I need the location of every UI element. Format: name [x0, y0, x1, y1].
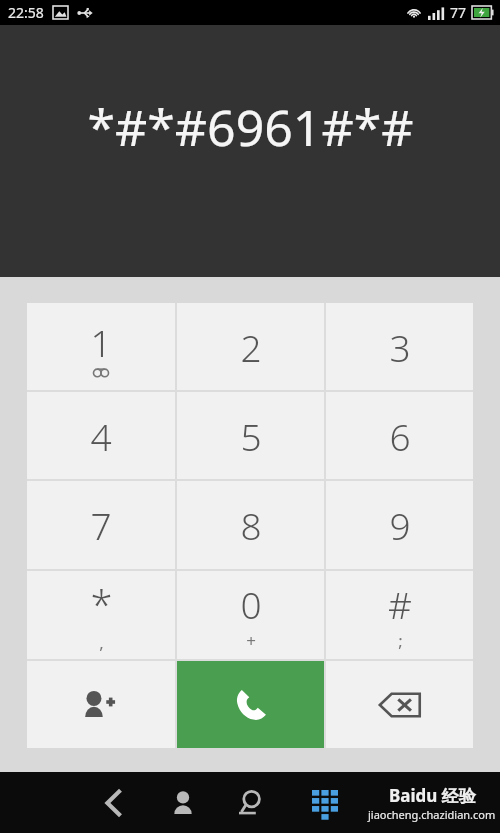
button[interactable]: 5: [177, 392, 324, 479]
staticText: 77: [450, 3, 467, 22]
staticText: 2: [240, 322, 262, 372]
staticText: 6: [389, 411, 411, 461]
button[interactable]: 1: [27, 303, 175, 390]
button[interactable]: 6: [326, 392, 473, 479]
button[interactable]: *: [27, 571, 175, 659]
button[interactable]: 0: [177, 571, 324, 659]
staticText: Baidu 经验: [389, 784, 476, 807]
staticText: ;: [398, 629, 403, 652]
button[interactable]: Search: [224, 776, 278, 830]
button[interactable]: 8: [177, 481, 324, 569]
staticText: +: [246, 629, 256, 652]
staticText: 7: [90, 500, 112, 550]
button[interactable]: 2: [177, 303, 324, 390]
button[interactable]: 9: [326, 481, 473, 569]
button[interactable]: Back: [86, 776, 140, 830]
staticText: 5: [240, 411, 262, 461]
staticText: 4: [90, 411, 112, 461]
button[interactable]: Call: [177, 661, 324, 748]
staticText: 0: [240, 579, 262, 629]
staticText: 22:58: [8, 3, 44, 22]
staticText: 9: [389, 500, 411, 550]
staticText: #: [388, 579, 412, 629]
staticText: *: [90, 577, 113, 631]
button[interactable]: #: [326, 571, 473, 659]
button[interactable]: 4: [27, 392, 175, 479]
staticText: *#*#6961#*#: [87, 93, 414, 161]
staticText: 1: [90, 317, 112, 367]
staticText: ,: [99, 631, 104, 654]
button[interactable]: Contacts: [156, 776, 210, 830]
staticText: 3: [389, 322, 411, 372]
button[interactable]: Add contact: [27, 661, 175, 748]
button[interactable]: Dialpad: [298, 776, 352, 830]
staticText: jiaocheng.chazidian.com: [368, 807, 496, 822]
button[interactable]: Delete: [326, 661, 473, 748]
button[interactable]: 3: [326, 303, 473, 390]
button[interactable]: 7: [27, 481, 175, 569]
staticText: 8: [240, 500, 262, 550]
